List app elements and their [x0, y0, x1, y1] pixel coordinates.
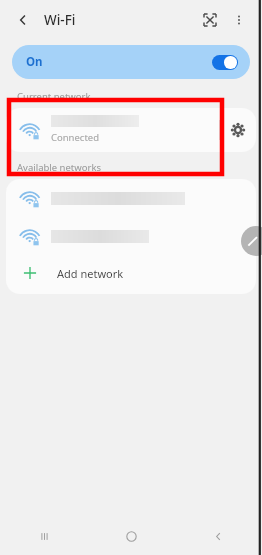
button[interactable]: Connected — [6, 108, 219, 152]
staticText: On — [26, 54, 43, 70]
button[interactable]: More options — [226, 6, 252, 34]
button[interactable]: Edit — [241, 226, 262, 256]
button[interactable]: Home — [88, 517, 175, 555]
button[interactable] — [6, 179, 256, 217]
button[interactable] — [6, 217, 256, 255]
button[interactable]: Back — [175, 517, 262, 555]
button[interactable]: Back — [10, 7, 36, 33]
button[interactable]: Scan QR code — [196, 6, 224, 34]
staticText: Available networks — [17, 161, 101, 174]
button[interactable]: Add network — [6, 255, 256, 291]
staticText: Wi-Fi — [44, 11, 76, 29]
button[interactable]: On — [12, 45, 250, 79]
button[interactable]: Recent apps — [0, 517, 88, 555]
staticText: Connected — [51, 131, 100, 144]
staticText: Current network — [17, 90, 91, 103]
staticText: Add network — [57, 266, 124, 281]
button[interactable]: Network settings — [220, 108, 256, 152]
